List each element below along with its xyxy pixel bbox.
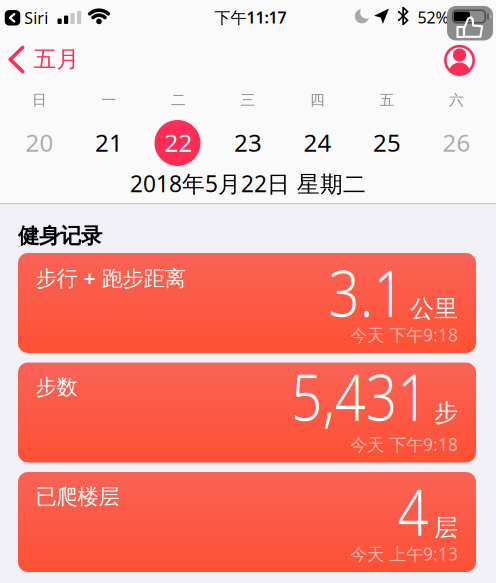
staticText: 22 — [164, 127, 192, 158]
staticText: 三 — [240, 91, 255, 109]
staticText: 20 — [25, 127, 53, 158]
staticText: Siri — [24, 7, 48, 28]
staticText: 今天 下午9:18 — [350, 433, 458, 456]
staticText: 今天 上午9:13 — [350, 542, 458, 565]
staticText: 五 — [379, 91, 394, 109]
button[interactable]: 个人资料 — [444, 45, 475, 76]
staticText: 五月 — [33, 45, 79, 73]
staticText: 5,431 — [267, 353, 429, 438]
staticText: 一 — [101, 91, 116, 109]
staticText: 步行 + 跑步距离 — [35, 263, 185, 292]
button[interactable]: 已爬楼层 — [18, 472, 476, 572]
button[interactable]: 25 — [364, 119, 410, 165]
button[interactable]: 21 — [86, 119, 132, 165]
button[interactable]: 返回 Siri — [5, 7, 48, 28]
staticText: 日 — [32, 91, 47, 109]
staticText: 四 — [310, 91, 325, 109]
button[interactable]: 20 — [16, 119, 62, 165]
staticText: 六 — [449, 91, 464, 109]
staticText: 已爬楼层 — [35, 484, 119, 510]
staticText: 23 — [234, 127, 262, 158]
staticText: 25 — [373, 127, 401, 158]
button[interactable]: 步数 — [18, 362, 476, 462]
staticText: 二 — [171, 91, 186, 109]
staticText: 下午11:17 — [214, 7, 286, 28]
button[interactable]: 24 — [294, 119, 340, 165]
button[interactable]: 26 — [433, 119, 479, 165]
button[interactable]: 23 — [225, 119, 271, 165]
staticText: 步 — [434, 398, 458, 428]
button[interactable]: 返回五月 — [8, 45, 86, 73]
staticText: 健身记录 — [18, 223, 102, 249]
staticText: 2018年5月22日 星期二 — [130, 168, 366, 198]
staticText: 今天 下午9:18 — [350, 323, 458, 346]
staticText: 26 — [442, 127, 470, 158]
staticText: 52% — [417, 7, 448, 28]
staticText: 公里 — [410, 294, 458, 324]
staticText: 步数 — [35, 374, 77, 400]
staticText: 3.1 — [315, 249, 405, 334]
staticText: 21 — [95, 127, 123, 158]
button[interactable]: 步行 + 跑步距离 — [18, 253, 476, 353]
button[interactable]: 22 — [155, 119, 201, 165]
staticText: 24 — [303, 127, 331, 158]
staticText: 4 — [392, 468, 429, 553]
button[interactable]: 点赞 — [447, 5, 493, 41]
staticText: 层 — [434, 513, 458, 543]
